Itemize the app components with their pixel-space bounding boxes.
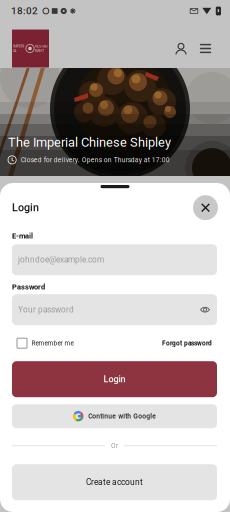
staticText: IMPERIAL [13, 44, 25, 53]
staticText: Continue with Google [88, 412, 156, 420]
staticText: Login [103, 374, 125, 384]
staticText: 18:02 [11, 5, 38, 17]
staticText: Password [12, 282, 45, 291]
staticText: RESTAURANT [35, 44, 48, 53]
staticText: Or [111, 442, 118, 450]
button[interactable]: Remember me [17, 336, 73, 350]
button[interactable]: Account [169, 28, 193, 68]
staticText: johndoe@example.com [18, 255, 104, 265]
staticText: Login [12, 201, 39, 214]
staticText: E-mail [12, 231, 33, 240]
staticText: Forgot password [162, 339, 212, 347]
staticText: The Imperial Chinese Shipley [8, 135, 171, 150]
staticText: Your password [18, 305, 74, 315]
button[interactable]: Forgot password [162, 336, 212, 350]
staticText: Closed for delivery. Opens on Thursday a… [21, 156, 170, 164]
button[interactable]: Menu [194, 28, 217, 68]
button[interactable]: Close [193, 195, 218, 220]
button[interactable]: Continue with Google [12, 404, 217, 428]
button[interactable]: Create account [12, 464, 217, 500]
staticText: Remember me [31, 339, 73, 347]
staticText: Create account [86, 477, 143, 487]
button[interactable]: Login [12, 361, 217, 397]
